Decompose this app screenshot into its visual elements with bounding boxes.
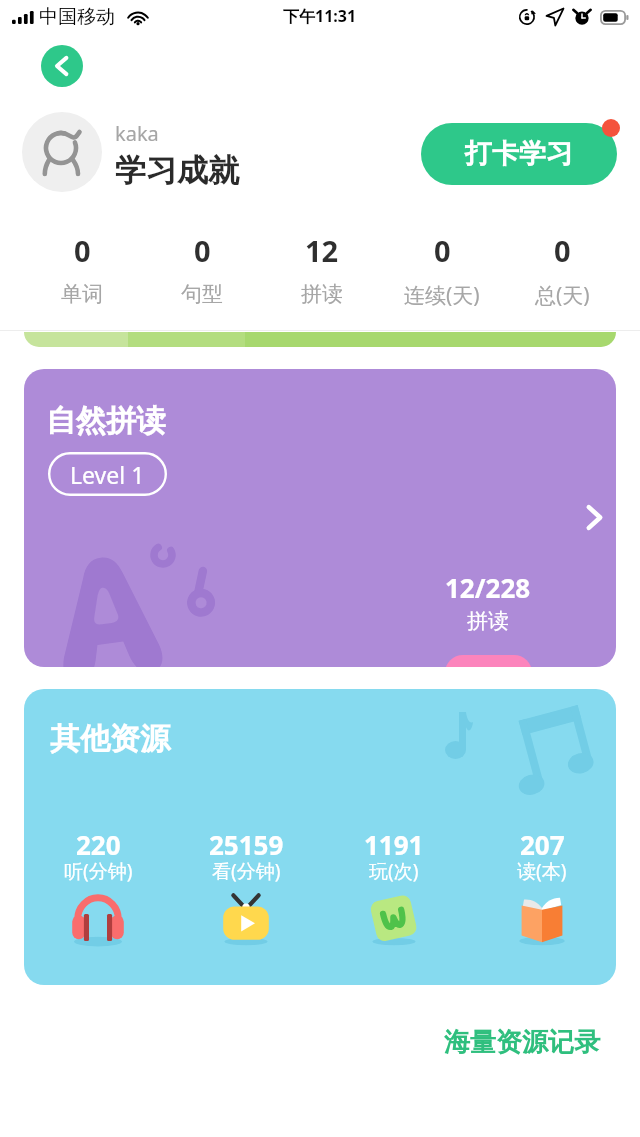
staticText: 拼读 [467,608,509,634]
staticText: 下午11:31 [283,5,357,27]
button[interactable]: 220 [24,827,172,950]
staticText: 听(分钟) [64,858,133,884]
button[interactable]: 25159 [172,827,320,950]
button[interactable]: 0 [382,231,502,310]
staticText: 1191 [364,827,424,862]
staticText: 207 [520,827,565,862]
button[interactable]: Level 1 [48,452,167,496]
staticText: 总(天) [535,281,590,310]
button[interactable]: 0 [142,231,262,307]
button[interactable]: 12 [262,231,382,307]
staticText: 连续(天) [404,281,480,310]
staticText: 自然拼读 [46,402,166,440]
button[interactable]: 1191 [320,827,468,950]
staticText: 读(本) [517,858,567,884]
staticText: Level 1 [70,459,145,490]
button[interactable]: 0 [502,231,622,310]
staticText: 学习成就 [115,151,239,190]
staticText: 中国移动 [39,5,115,29]
staticText: 看(分钟) [212,858,281,884]
staticText: 12 [305,231,339,270]
staticText: 220 [76,827,121,862]
staticText: 0 [434,231,451,270]
button[interactable] [24,332,616,347]
staticText: 单词 [61,281,103,307]
staticText: 玩(次) [369,858,419,884]
staticText: 打卡学习 [465,137,573,171]
button[interactable]: Open 自然拼读 [572,495,616,539]
staticText: 25159 [209,827,284,862]
staticText: 0 [554,231,571,270]
staticText: 句型 [181,281,223,307]
button[interactable]: 0 [22,231,142,307]
staticText: 海量资源记录 [444,1026,600,1059]
staticText: 其他资源 [50,720,170,758]
staticText: kaka [115,120,159,147]
button[interactable]: 海量资源记录 [444,1026,600,1059]
button[interactable]: 207 [468,827,616,950]
button[interactable]: Back [41,45,83,87]
button[interactable]: 自然拼读 [24,369,616,667]
button[interactable]: 打卡学习 [421,123,617,185]
staticText: 0 [194,231,211,270]
staticText: 拼读 [301,281,343,307]
staticText: 12/228 [445,570,531,605]
staticText: 0 [74,231,91,270]
button[interactable]: 其他资源 [24,689,616,985]
